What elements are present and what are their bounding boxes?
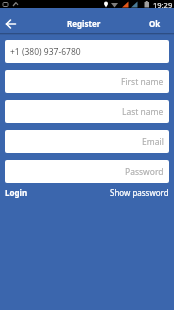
button[interactable]: Login: [5, 187, 28, 198]
staticText: Register: [67, 18, 101, 29]
button[interactable]: Password: [5, 160, 169, 183]
button[interactable]: Email: [5, 130, 169, 153]
button[interactable]: Ok: [141, 12, 174, 35]
button[interactable]: +1 (380) 937-6780: [5, 40, 169, 63]
staticText: First name: [121, 76, 164, 88]
staticText: Login: [5, 187, 28, 198]
staticText: Show password: [110, 187, 169, 198]
staticText: +1 (380) 937-6780: [10, 46, 81, 58]
button[interactable]: [0, 13, 22, 35]
button[interactable]: Show password: [110, 187, 169, 198]
staticText: Password: [125, 166, 164, 178]
staticText: 19:29: [153, 0, 173, 8]
button[interactable]: First name: [5, 70, 169, 93]
staticText: Last name: [122, 106, 164, 118]
staticText: Ok: [149, 18, 161, 29]
button[interactable]: Last name: [5, 100, 169, 123]
staticText: Email: [142, 136, 164, 148]
